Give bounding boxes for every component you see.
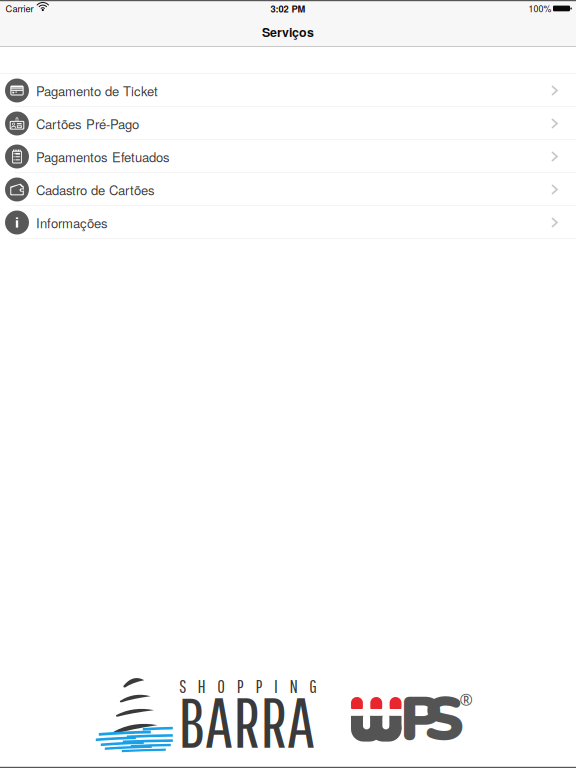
staticText: SHOPPING	[179, 675, 317, 697]
staticText: BARRA	[178, 680, 315, 762]
staticText: Pagamento de Ticket	[36, 81, 158, 100]
staticText: Cadastro de Cartões	[36, 180, 155, 199]
button[interactable]: Cartões Pré-Pago	[0, 107, 576, 140]
staticText: Pagamentos Efetuados	[36, 147, 170, 166]
staticText: P	[400, 678, 441, 761]
staticText: 3:02 PM	[270, 2, 305, 15]
staticText: Informações	[36, 213, 108, 232]
button[interactable]: Informações	[0, 206, 576, 239]
button[interactable]: Pagamentos Efetuados	[0, 140, 576, 173]
staticText: ®	[459, 689, 472, 710]
staticText: Cartões Pré-Pago	[36, 114, 139, 133]
button[interactable]: Pagamento de Ticket	[0, 74, 576, 107]
staticText: Serviços	[262, 23, 314, 41]
button[interactable]: Cadastro de Cartões	[0, 173, 576, 206]
staticText: 100%	[528, 2, 551, 15]
staticText: Carrier	[5, 1, 33, 15]
staticText: S	[424, 678, 464, 761]
